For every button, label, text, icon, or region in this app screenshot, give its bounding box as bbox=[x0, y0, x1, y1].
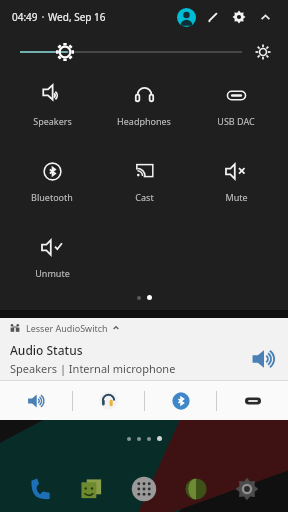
button[interactable]: Phone bbox=[24, 472, 58, 506]
button[interactable]: Headphones bbox=[73, 381, 144, 420]
button[interactable]: Edit tiles bbox=[200, 4, 226, 30]
button[interactable]: Brightness bbox=[20, 34, 274, 70]
button[interactable]: Apps bbox=[127, 472, 161, 506]
button[interactable]: Browser bbox=[179, 472, 213, 506]
button[interactable]: Bluetooth bbox=[6, 154, 98, 207]
button[interactable]: USB DAC bbox=[217, 381, 288, 420]
button[interactable]: Settings bbox=[230, 472, 264, 506]
button[interactable]: Audio Status bbox=[0, 338, 288, 380]
button[interactable]: Settings bbox=[226, 4, 252, 30]
staticText: Bluetooth bbox=[31, 191, 73, 203]
staticText: Lesser AudioSwitch bbox=[26, 322, 108, 334]
button[interactable]: Cast bbox=[98, 154, 190, 207]
button[interactable]: Bluetooth bbox=[145, 381, 216, 420]
button[interactable]: Speaker bbox=[0, 381, 72, 420]
button[interactable]: User bbox=[172, 3, 200, 31]
staticText: Wed, Sep 16 bbox=[48, 10, 106, 24]
button[interactable]: USB DAC bbox=[190, 78, 282, 131]
button[interactable]: Messaging bbox=[75, 472, 109, 506]
staticText: Audio Status bbox=[10, 342, 83, 358]
staticText: Headphones bbox=[117, 115, 171, 127]
button[interactable]: Collapse bbox=[252, 4, 278, 30]
staticText: Speakers | Internal microphone bbox=[10, 361, 176, 376]
button[interactable]: Headphones bbox=[98, 78, 190, 131]
staticText: Unmute bbox=[35, 267, 70, 279]
staticText: Mute bbox=[225, 191, 248, 203]
button[interactable]: Speakers bbox=[6, 78, 98, 131]
button[interactable]: Auto brightness bbox=[252, 41, 274, 63]
staticText: 04:49 bbox=[12, 10, 38, 24]
button[interactable]: Unmute bbox=[6, 230, 98, 283]
staticText: Cast bbox=[135, 191, 154, 203]
button[interactable]: Mute bbox=[190, 154, 282, 207]
button[interactable]: Lesser AudioSwitch bbox=[10, 318, 288, 338]
staticText: USB DAC bbox=[217, 115, 255, 127]
staticText: Speakers bbox=[33, 115, 72, 127]
